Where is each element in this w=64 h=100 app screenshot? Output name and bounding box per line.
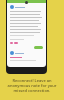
staticText: Reconnect! Leave an (1, 78, 63, 83)
staticText: anonymous note for your (1, 83, 63, 88)
button[interactable] (34, 46, 43, 49)
staticText: missed connection. (1, 88, 63, 93)
